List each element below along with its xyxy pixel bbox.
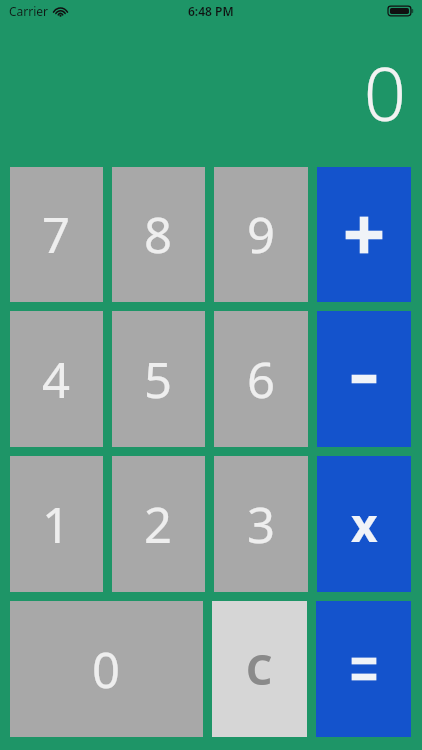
staticText: 4: [42, 346, 71, 413]
staticText: 8: [144, 201, 173, 268]
staticText: 7: [42, 201, 71, 268]
button[interactable]: 8: [112, 167, 205, 302]
staticText: 3: [247, 491, 276, 558]
staticText: 0: [92, 636, 121, 703]
button[interactable]: C: [212, 601, 307, 737]
staticText: x: [351, 493, 378, 556]
button[interactable]: 0: [10, 601, 203, 737]
staticText: 1: [42, 491, 71, 558]
button[interactable]: 3: [214, 456, 308, 592]
button[interactable]: Plus: [317, 167, 411, 302]
staticText: Carrier: [9, 3, 49, 19]
button[interactable]: 2: [112, 456, 205, 592]
button[interactable]: 7: [10, 167, 103, 302]
button[interactable]: 6: [214, 311, 308, 447]
staticText: 5: [144, 346, 173, 413]
staticText: 2: [144, 491, 173, 558]
button[interactable]: 5: [112, 311, 205, 447]
button[interactable]: Equals: [316, 601, 411, 737]
staticText: 6:48 PM: [188, 3, 234, 19]
staticText: C: [246, 641, 273, 697]
staticText: 0: [363, 42, 406, 143]
button[interactable]: 4: [10, 311, 103, 447]
button[interactable]: 1: [10, 456, 103, 592]
button[interactable]: Multiply: [317, 456, 411, 592]
staticText: 9: [247, 201, 276, 268]
button[interactable]: Minus: [317, 311, 411, 447]
staticText: 6: [247, 346, 276, 413]
button[interactable]: 9: [214, 167, 308, 302]
